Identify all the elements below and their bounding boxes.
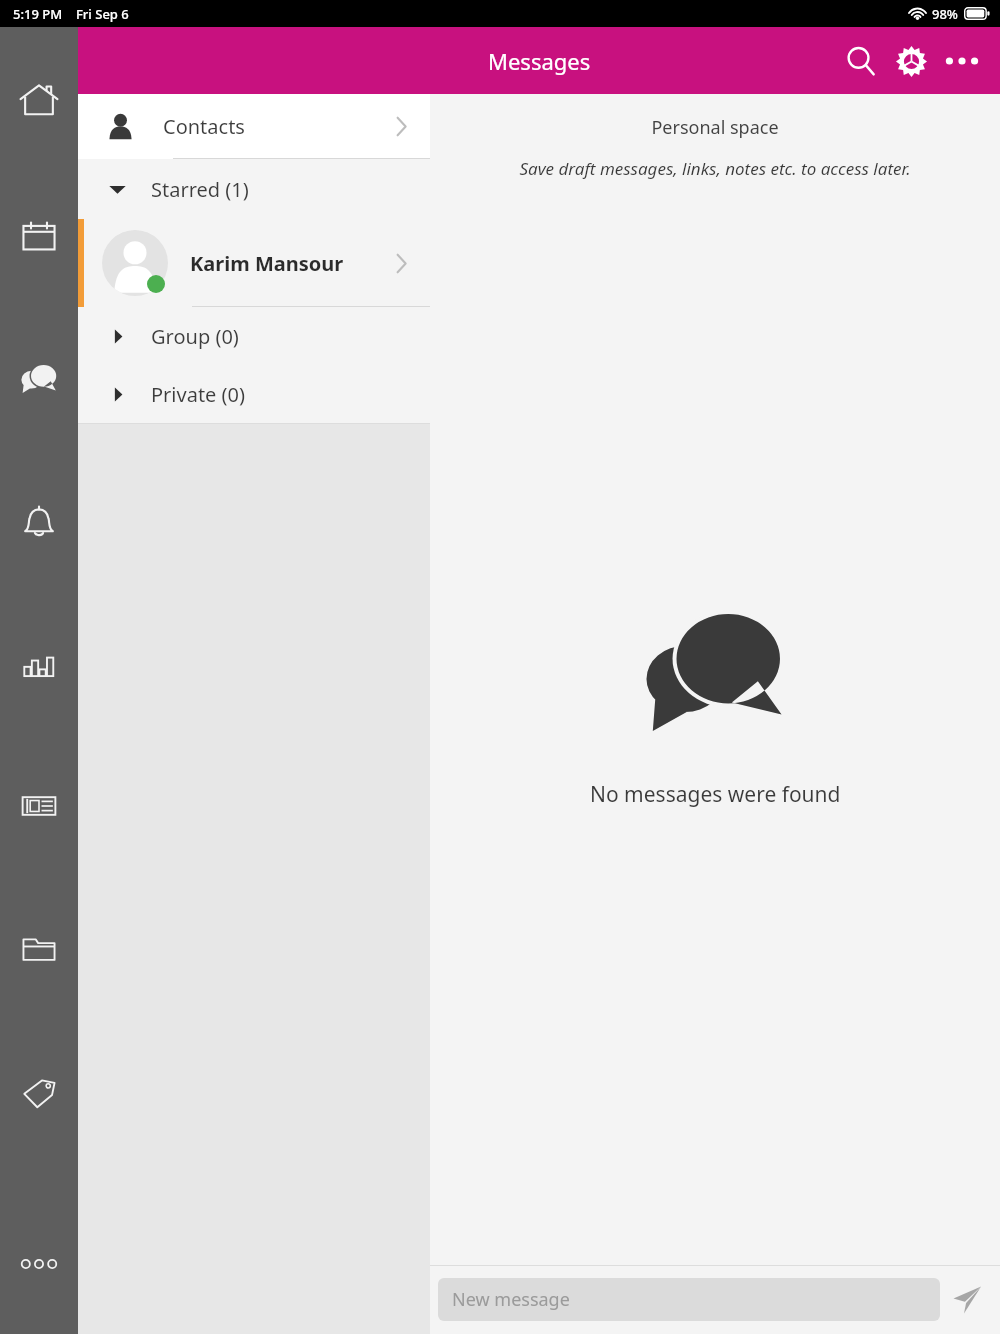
button[interactable]: Statistics (0, 643, 78, 689)
button[interactable]: More (0, 1238, 78, 1334)
staticText: Save draft messages, links, notes etc. t… (430, 157, 1000, 180)
button[interactable]: Karim Mansour (78, 219, 430, 307)
button[interactable]: Send (940, 1273, 994, 1327)
staticText: Fri Sep 6 (76, 5, 129, 23)
staticText: Personal space (430, 115, 1000, 140)
staticText: Messages (488, 46, 591, 76)
button[interactable]: Contacts (78, 94, 430, 159)
staticText: Group (0) (151, 323, 239, 350)
staticText: Private (0) (151, 381, 246, 408)
button[interactable]: Notifications (0, 499, 78, 545)
staticText: New message (452, 1287, 570, 1312)
staticText: Karim Mansour (190, 250, 344, 277)
button[interactable]: Private (0) (78, 365, 430, 423)
staticText: 98% (932, 5, 958, 23)
staticText: Contacts (163, 113, 245, 140)
button[interactable]: Tags (0, 1070, 78, 1116)
button[interactable]: Messages (0, 355, 78, 401)
staticText: No messages were found (590, 780, 841, 809)
button[interactable]: Search (836, 36, 886, 86)
button[interactable]: Files (0, 926, 78, 972)
button[interactable]: Calendar (0, 213, 78, 259)
button[interactable]: Settings (886, 36, 936, 86)
staticText: 5:19 PM (13, 5, 63, 23)
staticText: Starred (1) (151, 176, 249, 203)
button[interactable]: More options (936, 35, 988, 87)
button[interactable]: Starred (1) (78, 159, 430, 219)
button[interactable]: Group (0) (78, 307, 430, 365)
button[interactable]: News (0, 783, 78, 829)
button[interactable]: Home (0, 77, 78, 123)
button[interactable]: New message (438, 1278, 940, 1321)
